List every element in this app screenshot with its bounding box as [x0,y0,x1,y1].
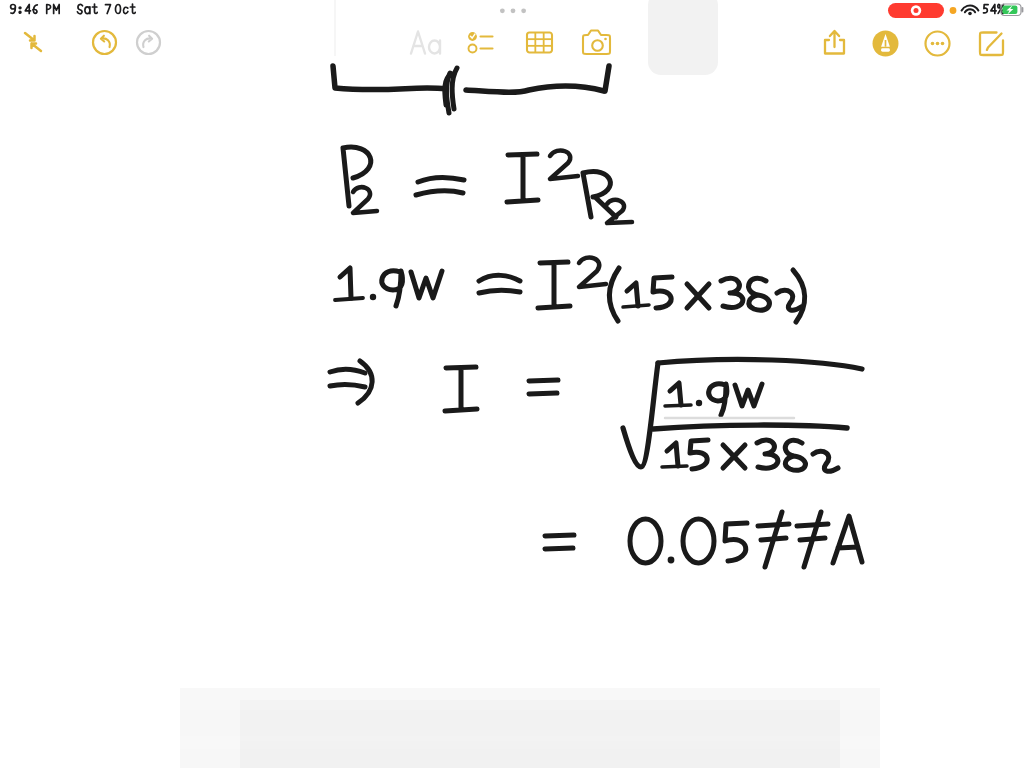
button[interactable]: Checklist [461,24,502,61]
button[interactable]: Undo [86,24,123,61]
button[interactable]: Collapse [14,23,52,61]
button[interactable]: Table [519,24,560,61]
button[interactable]: Window controls [494,2,532,18]
button[interactable]: Text style [406,24,446,61]
button[interactable]: New note [972,24,1011,63]
button[interactable]: Camera [576,24,617,61]
button[interactable]: Markup [866,24,905,63]
button[interactable]: Redo [130,24,167,61]
button[interactable]: More [918,24,957,63]
button[interactable]: Share [815,22,854,63]
